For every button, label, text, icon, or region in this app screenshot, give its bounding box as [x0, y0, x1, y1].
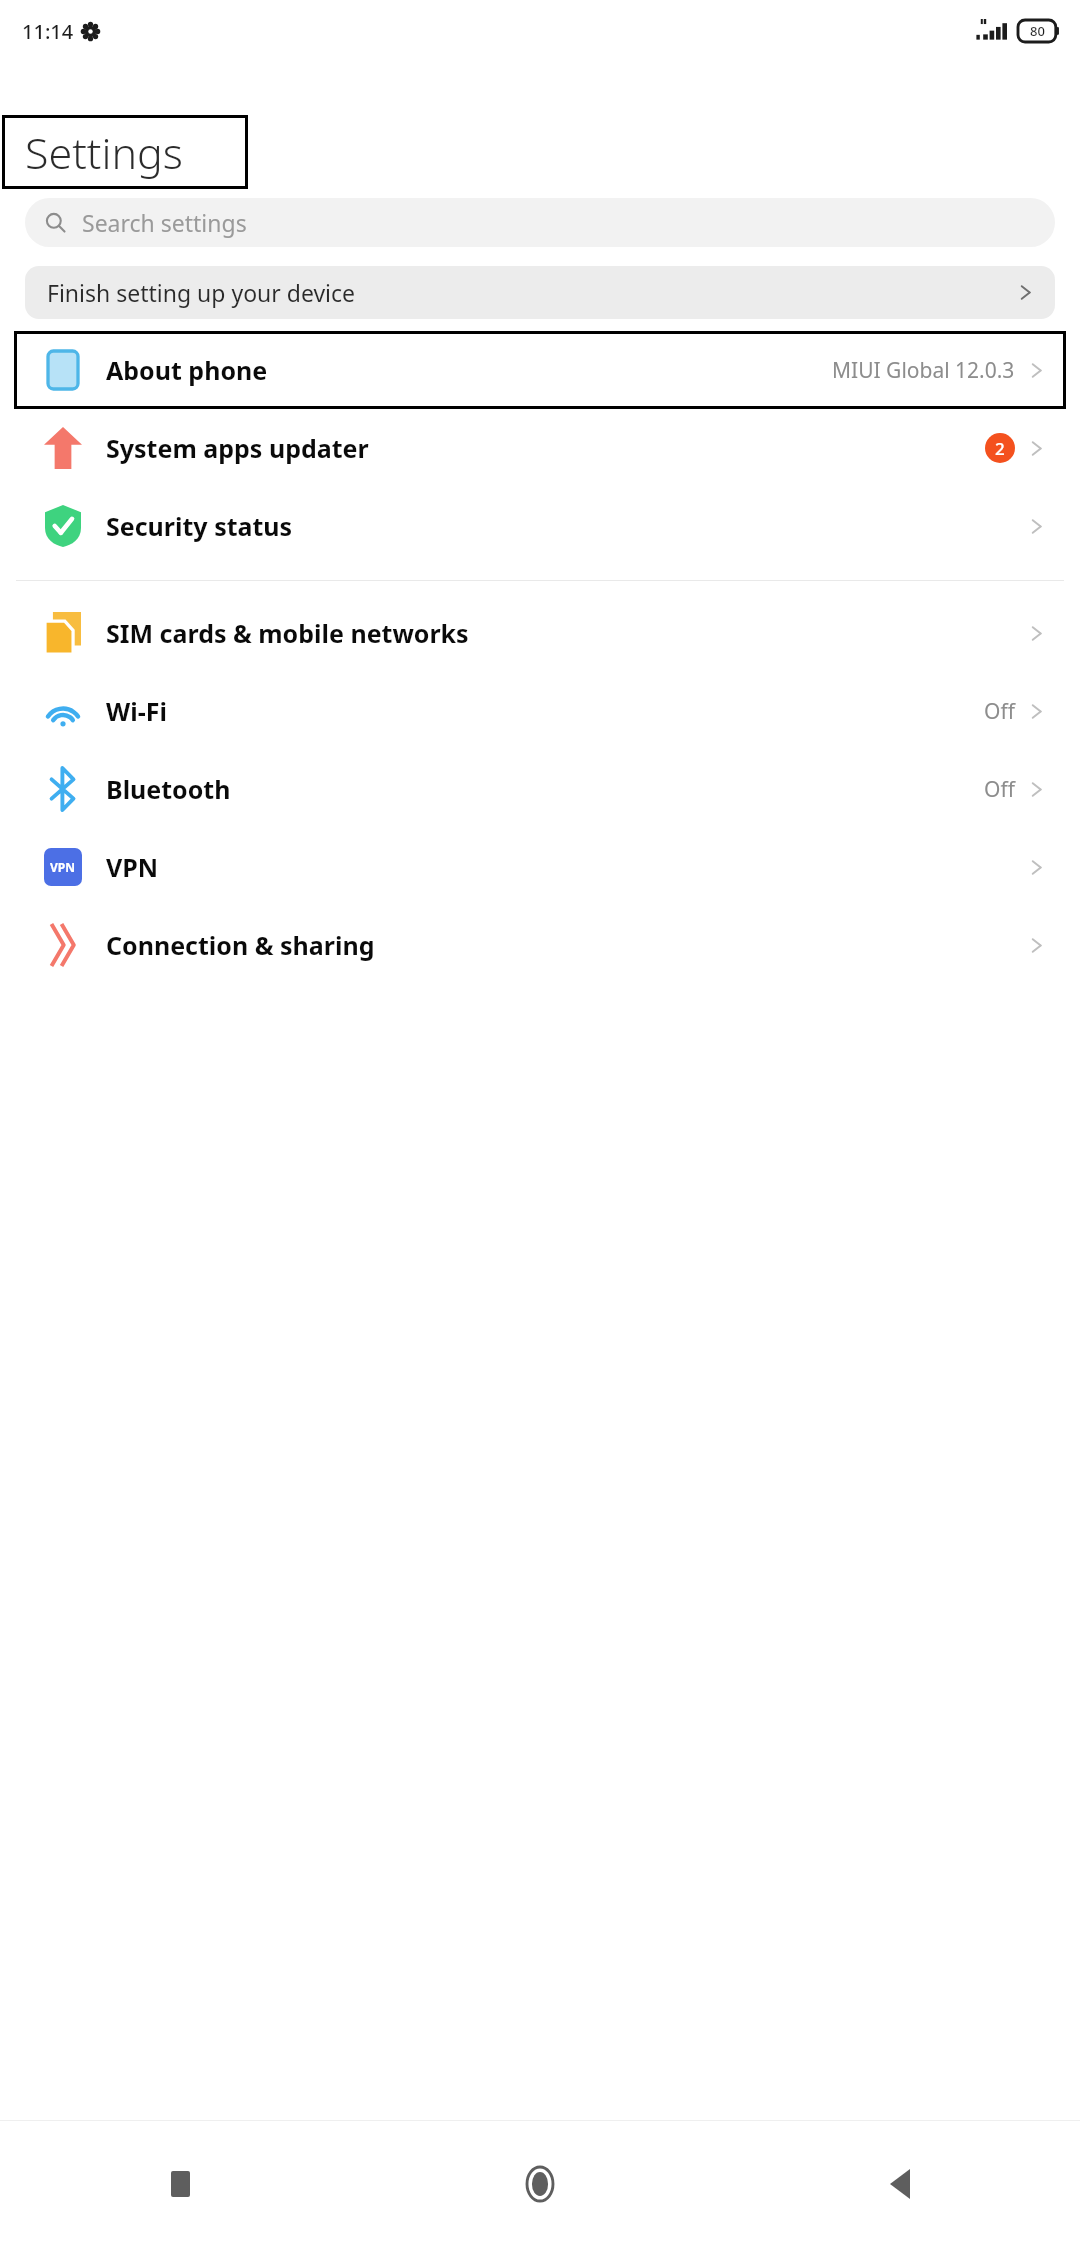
staticText: Finish setting up your device [47, 277, 356, 308]
staticText: Off [984, 775, 1015, 804]
button[interactable]: Home [360, 2121, 720, 2246]
staticText: 2 [995, 437, 1005, 460]
button[interactable]: Recents [0, 2121, 360, 2246]
staticText: SIM cards & mobile networks [106, 616, 469, 650]
staticText: MIUI Global 12.0.3 [832, 356, 1015, 385]
button[interactable]: About phone [14, 331, 1066, 409]
button[interactable]: SIM cards & mobile networks [0, 594, 1080, 672]
button[interactable]: Security status [0, 487, 1080, 565]
button[interactable]: Back [720, 2121, 1080, 2246]
staticText: Search settings [82, 207, 247, 238]
staticText: Security status [106, 509, 293, 543]
button[interactable]: Search settings [25, 198, 1055, 247]
staticText: Bluetooth [106, 772, 231, 806]
staticText: VPN [50, 859, 76, 875]
staticText: About phone [106, 353, 268, 387]
staticText: VPN [106, 850, 159, 884]
button[interactable]: Wi-Fi [0, 672, 1080, 750]
button[interactable]: Settings [2, 115, 248, 189]
button[interactable]: Bluetooth [0, 750, 1080, 828]
button[interactable]: VPN [0, 828, 1080, 906]
button[interactable]: System apps updater [0, 409, 1080, 487]
staticText: 11:14 [22, 18, 74, 45]
staticText: 80 [1030, 22, 1045, 40]
button[interactable]: Finish setting up your device [25, 266, 1055, 319]
staticText: Off [984, 697, 1015, 726]
staticText: System apps updater [106, 431, 369, 465]
button[interactable]: Connection & sharing [0, 906, 1080, 984]
staticText: Settings [25, 123, 183, 182]
staticText: Wi-Fi [106, 694, 167, 728]
staticText: Connection & sharing [106, 928, 375, 962]
